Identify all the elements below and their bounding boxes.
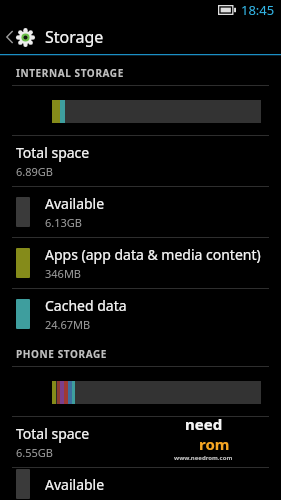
- staticText: 6.55GB: [16, 445, 53, 460]
- button[interactable]: Available: [0, 468, 281, 500]
- button[interactable]: Cached data: [0, 289, 281, 339]
- staticText: Available: [45, 194, 105, 213]
- staticText: 24.67MB: [45, 317, 91, 332]
- staticText: INTERNAL STORAGE: [16, 66, 124, 80]
- staticText: Apps (app data & media content): [45, 245, 261, 264]
- other: Back: [5, 29, 14, 45]
- staticText: 346MB: [45, 266, 82, 281]
- staticText: 18:45: [241, 1, 275, 19]
- staticText: need: [185, 414, 223, 434]
- staticText: Storage: [45, 26, 104, 48]
- staticText: 6.13GB: [45, 215, 82, 230]
- button[interactable]: Total space: [0, 417, 281, 467]
- button[interactable]: Available: [0, 187, 281, 237]
- button[interactable]: Apps (app data & media content): [0, 238, 281, 288]
- staticText: PHONE STORAGE: [16, 347, 108, 361]
- button[interactable]: Back: [0, 20, 281, 54]
- staticText: www.needrom.com: [174, 454, 233, 462]
- staticText: Total space: [16, 143, 90, 162]
- staticText: rom: [199, 434, 230, 454]
- staticText: Available: [45, 475, 105, 494]
- staticText: 6.89GB: [16, 164, 53, 179]
- button[interactable]: Total space: [0, 136, 281, 186]
- staticText: Total space: [16, 424, 90, 443]
- staticText: Cached data: [45, 296, 127, 315]
